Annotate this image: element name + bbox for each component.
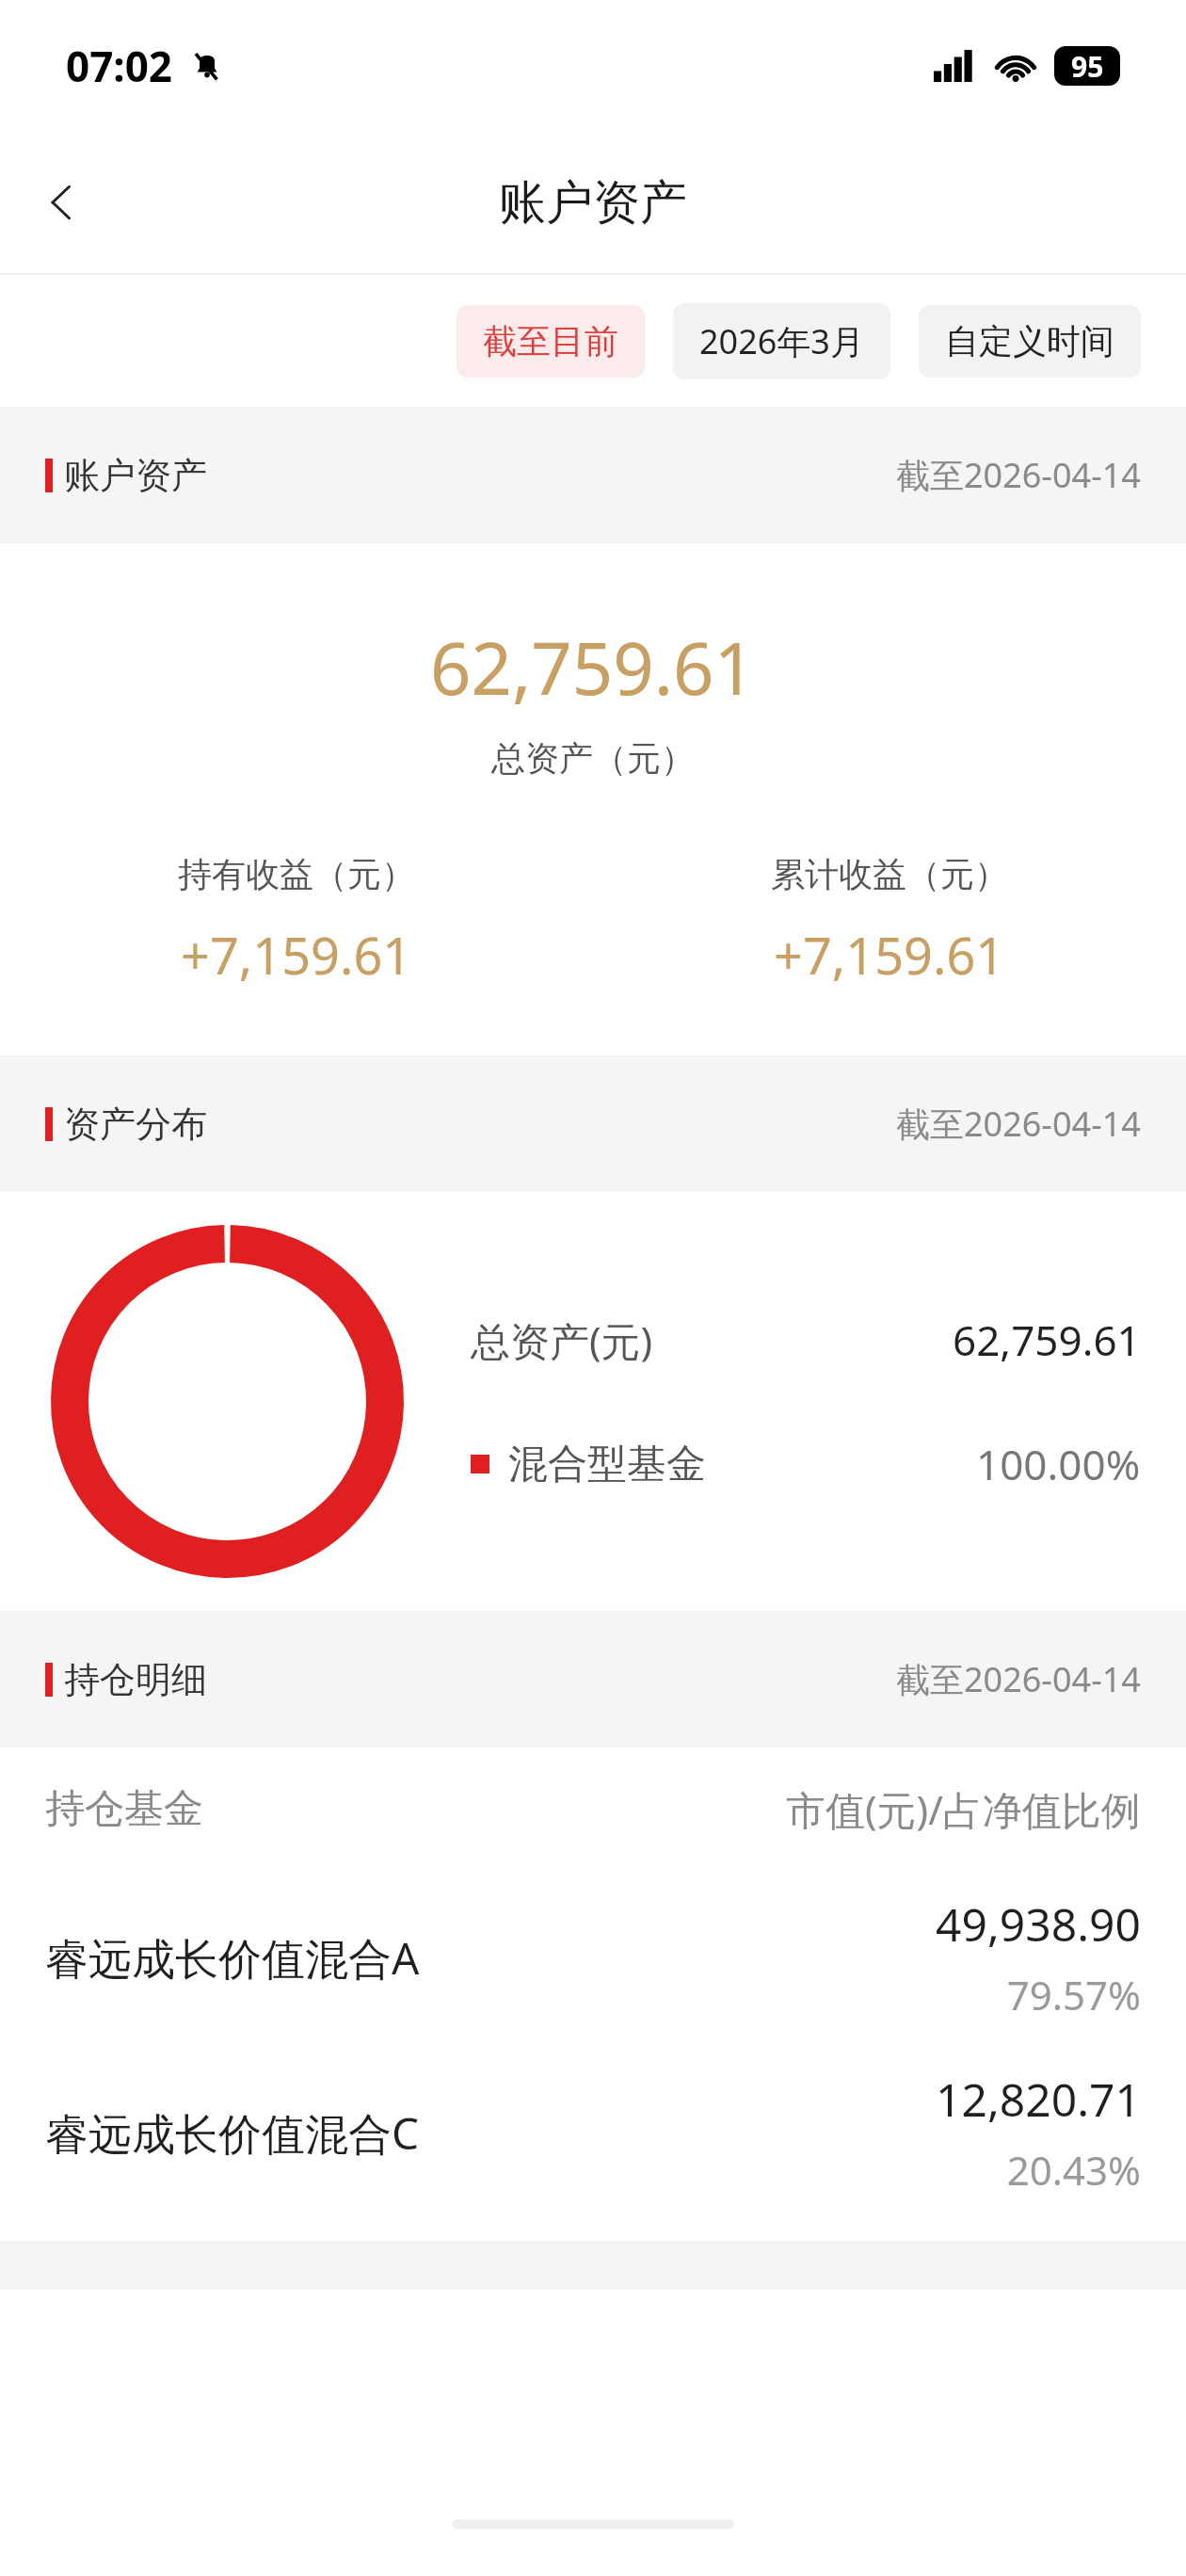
staticText: +7,159.61 <box>774 920 1005 990</box>
staticText: 持有收益（元） <box>178 853 415 895</box>
staticText: 62,759.61 <box>430 619 756 716</box>
staticText: 截至目前 <box>483 320 618 362</box>
staticText: 49,938.90 <box>936 1893 1141 1955</box>
staticText: +7,159.61 <box>181 920 412 990</box>
staticText: 市值(元)/占净值比例 <box>786 1782 1141 1836</box>
staticText: 累计收益（元） <box>771 853 1008 895</box>
staticText: 总资产（元） <box>491 737 695 780</box>
button[interactable]: 自定义时间 <box>919 305 1141 378</box>
button[interactable]: 截至目前 <box>457 305 645 378</box>
staticText: 07:02 <box>66 38 173 94</box>
staticText: 账户资产 <box>499 173 687 233</box>
staticText: 持仓基金 <box>45 1784 203 1834</box>
staticText: 截至2026-04-14 <box>896 1101 1141 1147</box>
staticText: 睿远成长价值混合C <box>45 2103 420 2163</box>
staticText: 截至2026-04-14 <box>896 452 1141 498</box>
staticText: 混合型基金 <box>508 1440 706 1489</box>
button[interactable]: 睿远成长价值混合A <box>0 1870 1186 2045</box>
staticText: 总资产(元) <box>471 1313 653 1367</box>
staticText: 持仓明细 <box>64 1657 207 1702</box>
staticText: 睿远成长价值混合A <box>45 1928 420 1988</box>
button[interactable]: 睿远成长价值混合C <box>0 2045 1186 2220</box>
staticText: 62,759.61 <box>953 1312 1141 1368</box>
staticText: 100.00% <box>976 1436 1141 1492</box>
staticText: 79.57% <box>1006 1968 1141 2021</box>
staticText: 95 <box>1071 47 1104 86</box>
button[interactable]: Back <box>19 159 105 246</box>
staticText: 2026年3月 <box>699 318 864 364</box>
staticText: 自定义时间 <box>945 320 1114 362</box>
staticText: 12,820.71 <box>936 2069 1141 2130</box>
staticText: 20.43% <box>1006 2143 1141 2197</box>
staticText: 账户资产 <box>64 453 207 498</box>
staticText: 截至2026-04-14 <box>896 1656 1141 1702</box>
button[interactable]: 2026年3月 <box>673 303 890 379</box>
staticText: 资产分布 <box>64 1102 207 1147</box>
